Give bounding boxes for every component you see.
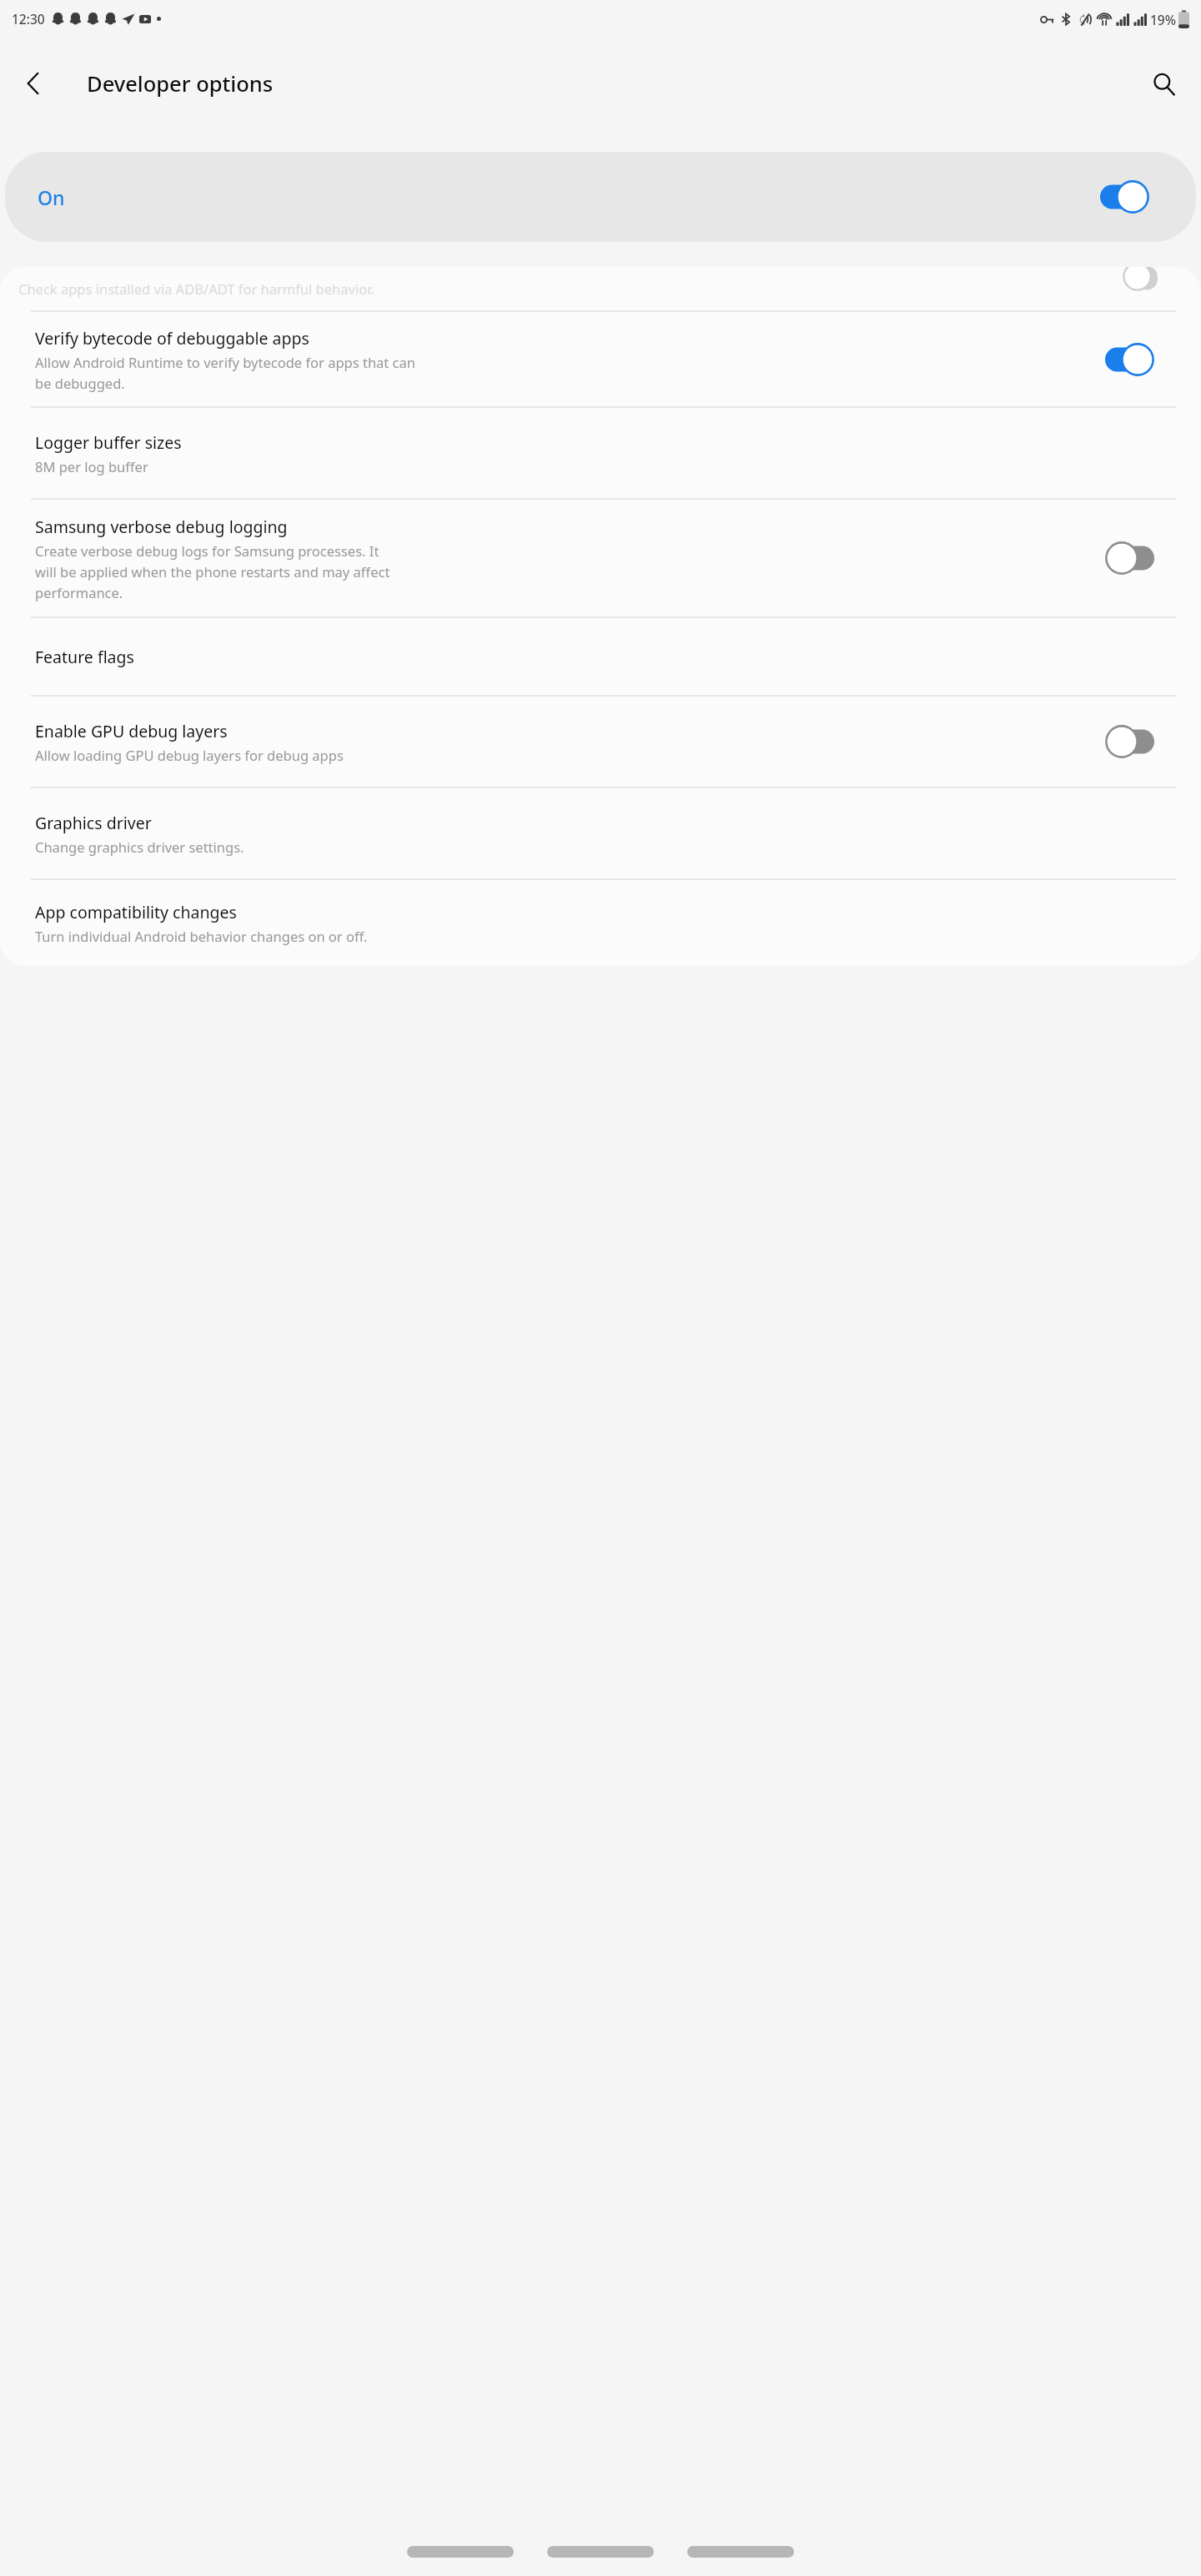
button[interactable]: Feature flags: [0, 618, 1201, 695]
staticText: On: [38, 184, 65, 210]
button[interactable]: Logger buffer sizes: [0, 408, 1201, 498]
button[interactable]: Samsung verbose debug logging: [0, 500, 1201, 616]
button[interactable]: Recents: [407, 2539, 514, 2564]
button[interactable]: On: [5, 152, 1196, 242]
staticText: Change graphics driver settings.: [35, 838, 244, 856]
staticText: Create verbose debug logs for Samsung pr…: [35, 541, 390, 601]
staticText: Feature flags: [35, 646, 134, 668]
staticText: 12:30: [12, 10, 45, 28]
staticText: Allow loading GPU debug layers for debug…: [35, 746, 344, 764]
staticText: Allow Android Runtime to verify bytecode…: [35, 353, 415, 392]
button[interactable]: Back: [687, 2539, 794, 2564]
button[interactable]: Verify bytecode of debuggable apps: [0, 312, 1201, 406]
staticText: 8M per log buffer: [35, 457, 148, 475]
staticText: Verify bytecode of debuggable apps: [35, 327, 309, 350]
button[interactable]: Back: [10, 59, 58, 108]
button[interactable]: Search: [1138, 58, 1189, 109]
button[interactable]: Home: [547, 2539, 654, 2564]
staticText: Logger buffer sizes: [35, 431, 182, 454]
staticText: Samsung verbose debug logging: [35, 516, 288, 538]
staticText: Graphics driver: [35, 812, 152, 834]
staticText: Check apps installed via ADB/ADT for har…: [18, 279, 374, 298]
button[interactable]: Graphics driver: [0, 788, 1201, 878]
staticText: Turn individual Android behavior changes…: [35, 927, 368, 945]
button[interactable]: Enable GPU debug layers: [0, 697, 1201, 787]
staticText: App compatibility changes: [35, 901, 237, 923]
staticText: 19%: [1150, 11, 1176, 28]
staticText: Enable GPU debug layers: [35, 720, 228, 742]
button[interactable]: App compatibility changes: [0, 880, 1201, 966]
staticText: Developer options: [87, 69, 274, 98]
